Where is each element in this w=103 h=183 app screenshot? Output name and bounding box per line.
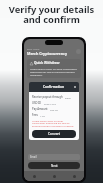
staticText: Fees [32, 113, 38, 117]
staticText: 1.20 [40, 114, 45, 117]
staticText: xxxx-1234 [44, 102, 56, 105]
staticText: Confirmation [43, 85, 65, 89]
staticText: Quick Withdraw [34, 61, 60, 65]
staticText: Verify your details and confirm [3, 3, 100, 25]
staticText: Pay Amount [32, 107, 48, 111]
staticText: Convert [48, 132, 61, 136]
staticText: 250.00 [50, 108, 58, 111]
staticText: Back home [27, 47, 40, 50]
button[interactable]: Profile [64, 171, 84, 181]
staticText: Lorem ipsum dolor sit amet consectetur a… [30, 67, 78, 76]
staticText: Email [30, 155, 37, 159]
staticText: Merch Cryptocurrency [27, 51, 67, 56]
button[interactable]: Convert [32, 130, 76, 138]
staticText: Next [51, 164, 58, 168]
staticText: USD ID [32, 101, 42, 105]
button[interactable]: Home [24, 171, 44, 181]
button[interactable]: Next [28, 162, 80, 169]
staticText: Receive payout through [32, 95, 63, 99]
button[interactable]: Close [73, 85, 77, 89]
staticText: Bank [65, 96, 71, 99]
button[interactable]: Search [44, 171, 64, 181]
button[interactable]: Email [28, 154, 80, 160]
button[interactable]: Profile [76, 49, 81, 54]
staticText: Lorem ipsum dolor sit amet consectetur a… [32, 119, 76, 128]
